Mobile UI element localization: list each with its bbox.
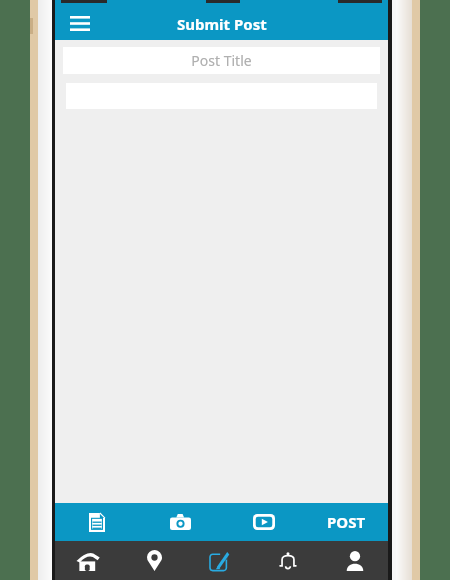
button[interactable]: Profile bbox=[321, 541, 388, 580]
button[interactable]: Add video bbox=[222, 503, 305, 541]
button[interactable]: Attach document bbox=[55, 503, 139, 541]
button[interactable]: Compose post bbox=[187, 541, 254, 580]
staticText: Submit Post bbox=[177, 14, 267, 34]
button[interactable]: Open navigation menu bbox=[63, 7, 97, 40]
button[interactable]: Home bbox=[55, 541, 121, 580]
staticText: Post Title bbox=[191, 51, 252, 70]
staticText: POST bbox=[327, 512, 366, 532]
button[interactable]: Post Title bbox=[63, 47, 380, 74]
button[interactable]: POST bbox=[305, 503, 388, 541]
button[interactable]: Notifications bbox=[254, 541, 321, 580]
button[interactable]: Nearby places bbox=[121, 541, 187, 580]
button[interactable]: Take photo bbox=[139, 503, 222, 541]
